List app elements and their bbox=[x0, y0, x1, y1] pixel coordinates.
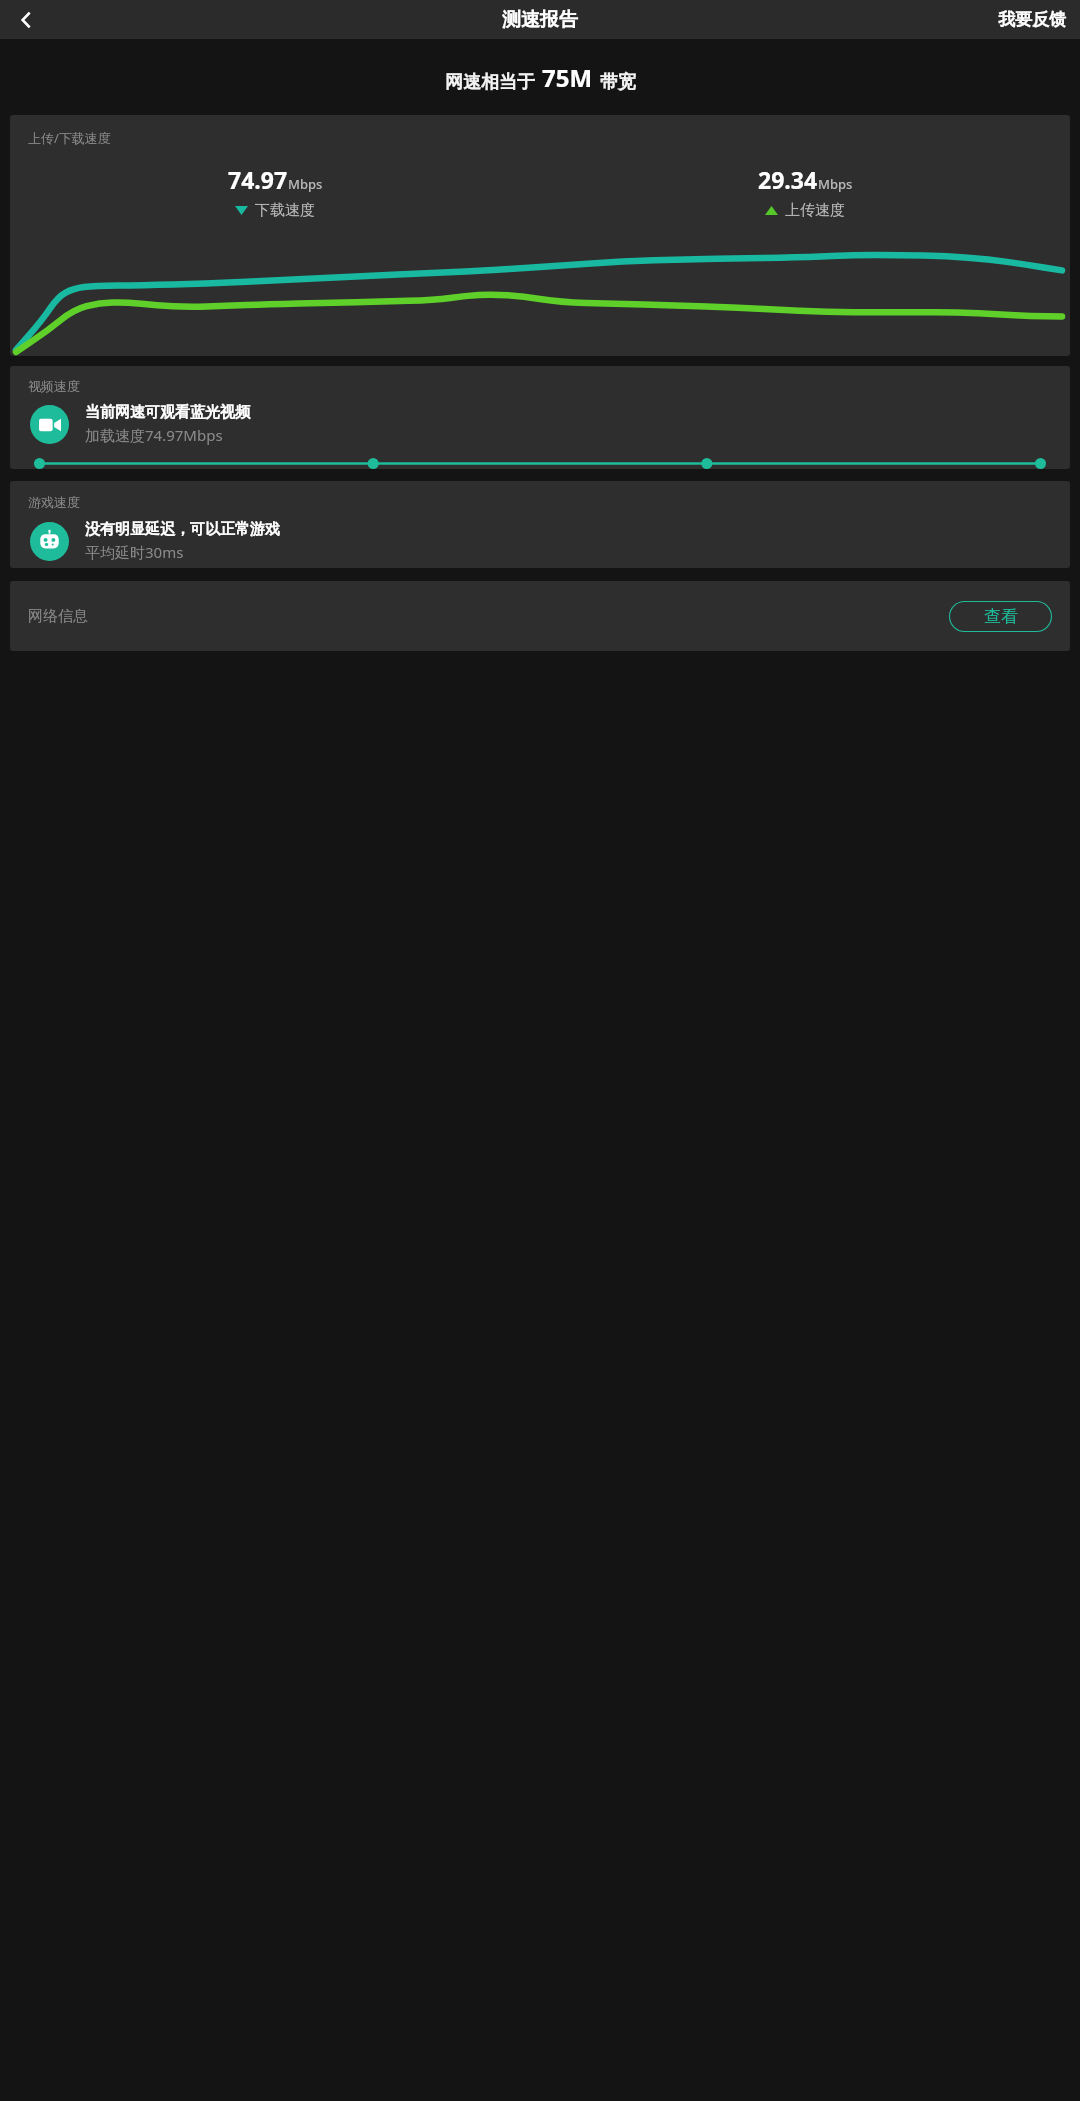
staticText: 当前网速可观看 bbox=[85, 403, 190, 422]
staticText: 75M bbox=[542, 61, 593, 94]
staticText: 没有明显延迟，可以正常游戏 bbox=[85, 520, 280, 539]
staticText: Mbps bbox=[818, 175, 853, 193]
staticText: 测速报告 bbox=[502, 8, 578, 32]
staticText: 游戏速度 bbox=[28, 494, 80, 510]
staticText: 上传速度 bbox=[785, 201, 845, 220]
staticText: 下载速度 bbox=[255, 201, 315, 220]
staticText: 加载速度74.97Mbps bbox=[85, 425, 223, 445]
button[interactable]: Back bbox=[4, 0, 48, 39]
staticText: 上传/下载速度 bbox=[28, 129, 111, 147]
staticText: 74.97 bbox=[228, 164, 288, 195]
staticText: 网络信息 bbox=[28, 607, 88, 626]
staticText: 查看 bbox=[984, 606, 1018, 627]
staticText: 我要反馈 bbox=[998, 9, 1066, 30]
staticText: 蓝光视频 bbox=[190, 403, 250, 422]
staticText: 网速相当于 bbox=[445, 71, 535, 94]
button[interactable]: 我要反馈 bbox=[984, 3, 1080, 36]
staticText: Mbps bbox=[288, 175, 323, 193]
staticText: 视频速度 bbox=[28, 378, 80, 394]
staticText: 平均延时30ms bbox=[85, 542, 184, 562]
staticText: 带宽 bbox=[600, 71, 636, 94]
staticText: 29.34 bbox=[758, 164, 818, 195]
button[interactable]: 查看 bbox=[949, 601, 1052, 632]
